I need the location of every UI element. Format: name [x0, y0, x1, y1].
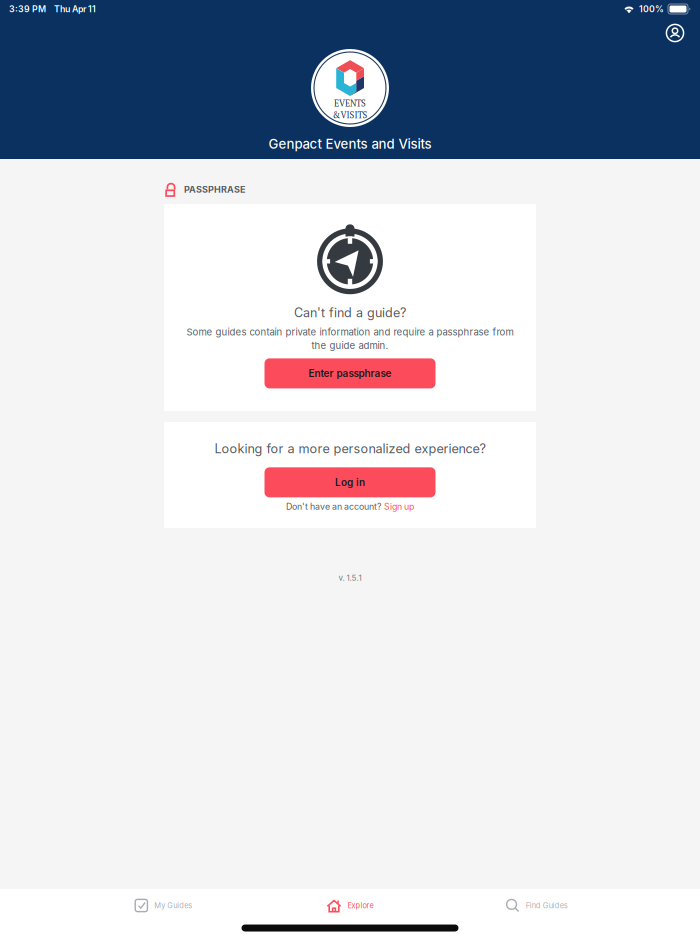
staticText: EVENTS: [334, 97, 366, 109]
staticText: the guide admin.: [311, 340, 388, 351]
button[interactable]: Find Guides: [443, 889, 630, 922]
staticText: Can't find a guide?: [294, 305, 406, 320]
button[interactable]: Sign up: [384, 501, 414, 512]
staticText: v. 1.5.1: [338, 573, 361, 583]
staticText: Log in: [335, 476, 365, 488]
staticText: &VISITS: [332, 109, 367, 121]
button[interactable]: Log in: [264, 467, 435, 497]
staticText: 3:39 PM: [9, 4, 46, 14]
staticText: PASSPHRASE: [184, 184, 246, 195]
staticText: Thu Apr 11: [54, 4, 96, 14]
staticText: Find Guides: [526, 901, 568, 910]
button[interactable]: Explore: [257, 889, 443, 922]
staticText: Explore: [347, 901, 373, 910]
staticText: My Guides: [154, 901, 192, 910]
button[interactable]: Account: [660, 18, 690, 48]
button[interactable]: Enter passphrase: [264, 358, 435, 388]
button[interactable]: My Guides: [70, 889, 257, 922]
staticText: 100%: [639, 4, 664, 14]
staticText: Sign up: [384, 501, 414, 512]
staticText: Enter passphrase: [308, 367, 391, 379]
staticText: Genpact Events and Visits: [268, 136, 431, 152]
staticText: Looking for a more personalized experien…: [214, 441, 485, 456]
staticText: Don't have an account?: [286, 501, 381, 512]
staticText: Some guides contain private information …: [186, 326, 513, 338]
